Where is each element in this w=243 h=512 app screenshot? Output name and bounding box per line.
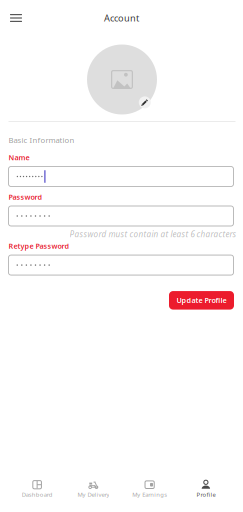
staticText: Retype Password <box>8 241 69 251</box>
staticText: Password must contain at least 6 charact… <box>69 228 236 240</box>
staticText: Update Profile <box>176 295 226 305</box>
staticText: Basic Information <box>8 135 74 145</box>
button[interactable]: My Earnings <box>121 472 178 506</box>
button[interactable]: Update Profile <box>169 291 234 310</box>
button[interactable]: Profile <box>178 472 234 506</box>
staticText: Dashboard <box>22 490 53 498</box>
staticText: Account <box>104 12 139 24</box>
button[interactable]: Edit photo <box>139 96 151 108</box>
button[interactable]: Dashboard <box>9 472 65 506</box>
staticText: My Delivery <box>77 490 109 498</box>
button[interactable]: Menu <box>6 8 26 28</box>
button[interactable]: My Delivery <box>65 472 121 506</box>
staticText: Name <box>8 153 29 162</box>
staticText: Profile <box>196 490 215 498</box>
staticText: Password <box>8 192 42 202</box>
staticText: My Earnings <box>132 490 167 498</box>
